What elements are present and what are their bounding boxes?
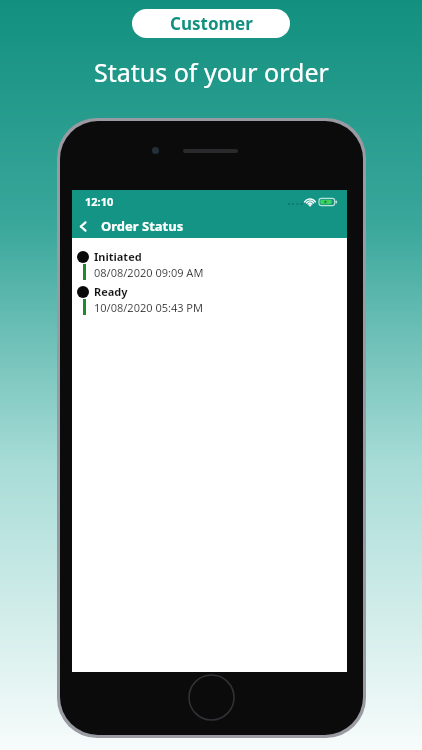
staticText: 10/08/2020 05:43 PM bbox=[94, 300, 203, 315]
staticText: 12:10 bbox=[85, 194, 114, 209]
button[interactable]: Initiated bbox=[72, 249, 347, 284]
staticText: 08/08/2020 09:09 AM bbox=[94, 265, 204, 280]
staticText: Initiated bbox=[94, 249, 142, 264]
button[interactable]: Home bbox=[188, 674, 235, 721]
staticText: Customer bbox=[170, 12, 253, 35]
staticText: Order Status bbox=[101, 217, 184, 235]
staticText: Status of your order bbox=[94, 55, 329, 89]
button[interactable]: Back bbox=[72, 215, 94, 237]
button[interactable]: Ready bbox=[72, 284, 347, 319]
button[interactable]: Customer bbox=[132, 9, 290, 38]
staticText: Ready bbox=[94, 284, 128, 299]
